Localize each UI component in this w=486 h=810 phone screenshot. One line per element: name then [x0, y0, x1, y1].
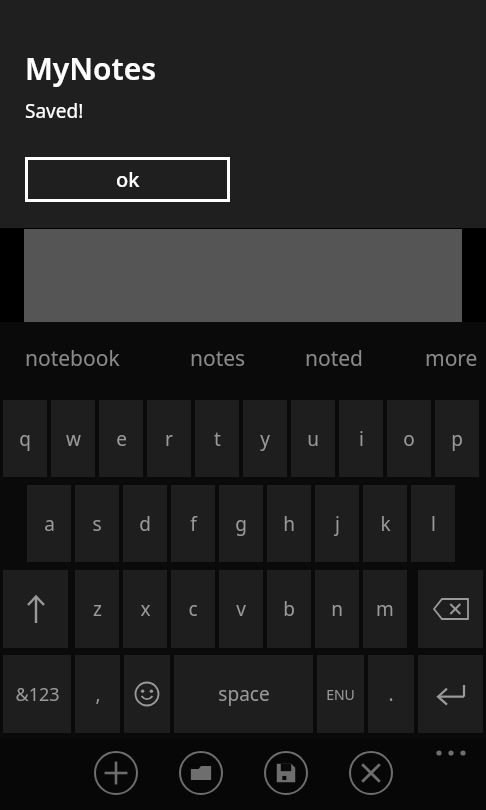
- staticText: e: [116, 426, 127, 452]
- staticText: d: [139, 511, 151, 537]
- button[interactable]: y: [243, 400, 287, 477]
- staticText: t: [214, 426, 221, 452]
- button[interactable]: p: [435, 400, 479, 477]
- staticText: k: [380, 511, 391, 537]
- staticText: notes: [190, 344, 246, 373]
- button[interactable]: z: [75, 570, 119, 648]
- button[interactable]: l: [411, 485, 455, 562]
- button[interactable]: r: [147, 400, 191, 477]
- staticText: MyNotes: [25, 48, 157, 89]
- button[interactable]: v: [219, 570, 263, 648]
- staticText: noted: [305, 344, 364, 373]
- staticText: w: [66, 426, 81, 452]
- button[interactable]: &123: [3, 655, 71, 733]
- button[interactable]: d: [123, 485, 167, 562]
- staticText: &123: [15, 682, 60, 707]
- button[interactable]: j: [315, 485, 359, 562]
- staticText: f: [190, 511, 197, 537]
- button[interactable]: notebook: [25, 322, 120, 394]
- button[interactable]: Enter: [418, 655, 483, 733]
- staticText: o: [403, 426, 415, 452]
- button[interactable]: i: [339, 400, 383, 477]
- button[interactable]: ENU: [317, 655, 364, 733]
- button[interactable]: .: [368, 655, 414, 733]
- staticText: space: [218, 681, 270, 707]
- button[interactable]: space: [174, 655, 313, 733]
- button[interactable]: ok: [25, 157, 230, 202]
- staticText: r: [165, 426, 173, 452]
- button[interactable]: h: [267, 485, 311, 562]
- staticText: a: [44, 511, 55, 537]
- button[interactable]: s: [75, 485, 119, 562]
- staticText: .: [388, 681, 394, 707]
- button[interactable]: f: [171, 485, 215, 562]
- button[interactable]: o: [387, 400, 431, 477]
- button[interactable]: x: [123, 570, 167, 648]
- staticText: u: [307, 426, 319, 452]
- button[interactable]: More options: [425, 738, 481, 768]
- staticText: p: [451, 426, 463, 452]
- button[interactable]: more: [425, 322, 478, 394]
- button[interactable]: t: [195, 400, 239, 477]
- button[interactable]: noted: [305, 322, 364, 394]
- staticText: ,: [95, 681, 101, 707]
- button[interactable]: Shift: [3, 570, 68, 648]
- button[interactable]: Cancel: [349, 751, 393, 795]
- button[interactable]: c: [171, 570, 215, 648]
- button[interactable]: e: [99, 400, 143, 477]
- button[interactable]: w: [51, 400, 95, 477]
- button[interactable]: b: [267, 570, 311, 648]
- staticText: z: [93, 596, 102, 622]
- staticText: b: [283, 596, 295, 622]
- staticText: ENU: [326, 685, 355, 704]
- button[interactable]: New note: [94, 751, 138, 795]
- button[interactable]: Open: [179, 751, 223, 795]
- staticText: c: [188, 596, 198, 622]
- staticText: v: [236, 596, 246, 622]
- button[interactable]: Emoji: [124, 655, 170, 733]
- button[interactable]: ,: [75, 655, 120, 733]
- button[interactable]: notes: [190, 322, 246, 394]
- button[interactable]: u: [291, 400, 335, 477]
- button[interactable]: Backspace: [418, 570, 483, 648]
- staticText: more: [425, 344, 478, 373]
- staticText: n: [331, 596, 343, 622]
- staticText: Saved!: [25, 98, 84, 124]
- button[interactable]: q: [3, 400, 47, 477]
- staticText: ok: [116, 166, 140, 193]
- button[interactable]: m: [363, 570, 407, 648]
- staticText: g: [235, 511, 247, 537]
- staticText: notebook: [25, 344, 120, 373]
- staticText: y: [260, 426, 270, 452]
- staticText: h: [283, 511, 295, 537]
- staticText: q: [19, 426, 31, 452]
- staticText: i: [359, 426, 364, 452]
- staticText: s: [92, 511, 102, 537]
- staticText: m: [376, 596, 394, 622]
- staticText: x: [140, 596, 151, 622]
- staticText: j: [335, 511, 340, 537]
- staticText: l: [431, 511, 436, 537]
- button[interactable]: Save: [264, 751, 308, 795]
- button[interactable]: n: [315, 570, 359, 648]
- button[interactable]: k: [363, 485, 407, 562]
- button[interactable]: g: [219, 485, 263, 562]
- button[interactable]: a: [27, 485, 71, 562]
